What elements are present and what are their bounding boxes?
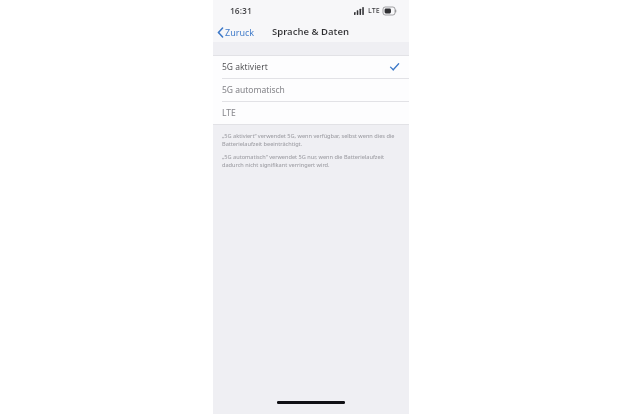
button[interactable]: 5G automatisch xyxy=(213,79,409,101)
staticText: LTE xyxy=(222,107,236,119)
staticText: Sprache & Daten xyxy=(272,25,350,38)
staticText: „5G automatisch“ verwendet 5G nur, wenn … xyxy=(222,153,400,168)
staticText: LTE xyxy=(368,6,380,16)
staticText: 16:31 xyxy=(230,5,252,17)
staticText: „5G aktiviert“ verwendet 5G, wenn verfüg… xyxy=(222,132,400,147)
staticText: Zuruck xyxy=(225,26,255,38)
staticText: 5G aktiviert xyxy=(222,61,268,73)
staticText: 5G automatisch xyxy=(222,84,285,96)
button[interactable]: Zuruck xyxy=(213,23,261,41)
button[interactable]: LTE xyxy=(213,102,409,124)
button[interactable]: 5G aktiviert xyxy=(213,56,409,78)
